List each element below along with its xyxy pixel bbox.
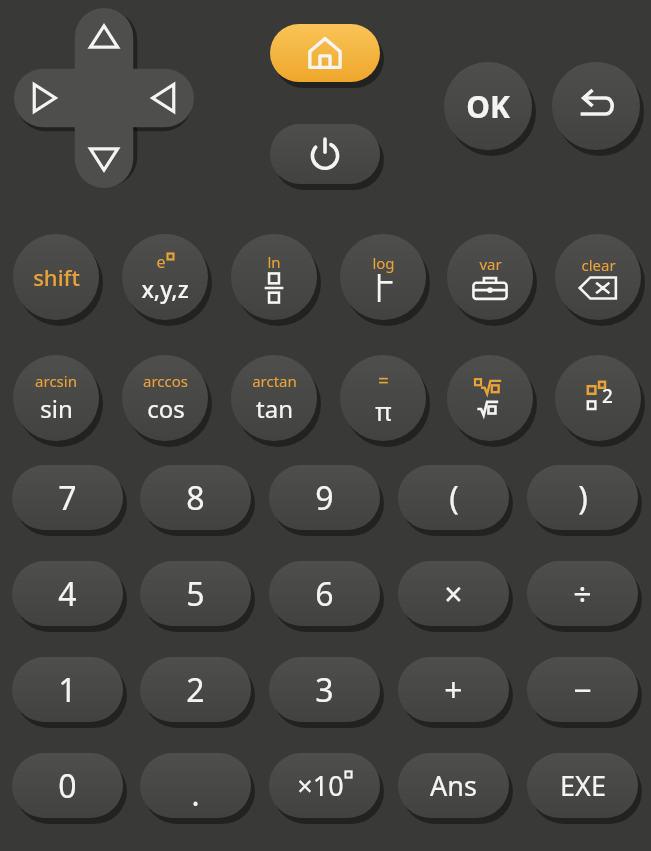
button[interactable]: 2 <box>140 657 251 722</box>
staticText: arcsin <box>35 371 77 391</box>
button[interactable]: x y z variables <box>122 234 208 320</box>
button[interactable]: 7 <box>12 465 123 530</box>
button[interactable]: ( <box>398 465 509 530</box>
staticText: var <box>479 254 502 274</box>
button[interactable]: 0 <box>12 753 123 818</box>
staticText: 8 <box>186 476 205 520</box>
button[interactable]: tan <box>231 355 317 441</box>
staticText: EXE <box>560 767 606 804</box>
staticText: ÷ <box>573 572 592 616</box>
staticText: tan <box>256 392 293 425</box>
button[interactable]: . <box>140 753 251 818</box>
button[interactable]: Back <box>552 62 640 150</box>
staticText: 3 <box>315 668 334 712</box>
button[interactable]: 3 <box>269 657 380 722</box>
button[interactable]: cos <box>122 355 208 441</box>
button[interactable]: Square <box>555 355 641 441</box>
button[interactable]: Log base <box>340 234 426 320</box>
staticText: clear <box>581 255 616 275</box>
staticText: shift <box>33 262 80 292</box>
button[interactable]: 9 <box>269 465 380 530</box>
staticText: 2 <box>186 668 205 712</box>
staticText: 0 <box>58 764 77 808</box>
staticText: 1 <box>58 668 77 712</box>
button[interactable]: Ans <box>398 753 509 818</box>
button[interactable]: Clear <box>555 234 641 320</box>
button[interactable]: shift <box>13 234 99 320</box>
staticText: arctan <box>252 371 297 391</box>
staticText: 6 <box>315 572 334 616</box>
button[interactable]: OK <box>444 62 532 150</box>
staticText: 9 <box>315 476 334 520</box>
button[interactable]: ×10 <box>269 753 380 818</box>
staticText: = <box>378 368 389 394</box>
staticText: e <box>156 251 166 273</box>
button[interactable]: Square root <box>447 355 533 441</box>
button[interactable]: sin <box>13 355 99 441</box>
staticText: arccos <box>143 371 188 391</box>
staticText: 5 <box>186 572 205 616</box>
button[interactable]: Fraction <box>231 234 317 320</box>
staticText: . <box>191 774 200 815</box>
button[interactable]: − <box>527 657 638 722</box>
button[interactable]: ÷ <box>527 561 638 626</box>
button[interactable]: 6 <box>269 561 380 626</box>
button[interactable]: EXE <box>527 753 638 818</box>
staticText: ) <box>578 476 588 520</box>
staticText: Ans <box>430 767 477 804</box>
button[interactable]: Home <box>270 24 380 82</box>
button[interactable]: pi <box>340 355 426 441</box>
staticText: x,y,z <box>141 273 189 304</box>
button[interactable]: + <box>398 657 509 722</box>
button[interactable]: 4 <box>12 561 123 626</box>
staticText: OK <box>466 86 510 127</box>
staticText: 2 <box>602 383 613 409</box>
button[interactable]: × <box>398 561 509 626</box>
staticText: − <box>573 668 592 712</box>
staticText: 4 <box>58 572 77 616</box>
staticText: + <box>444 668 463 712</box>
staticText: sin <box>40 392 73 425</box>
staticText: cos <box>147 392 185 425</box>
button[interactable]: 8 <box>140 465 251 530</box>
button[interactable]: 5 <box>140 561 251 626</box>
staticText: ×10 <box>297 767 344 804</box>
button[interactable]: Power <box>270 124 380 184</box>
staticText: × <box>444 572 463 616</box>
staticText: log <box>372 253 395 273</box>
button[interactable]: Variables <box>447 234 533 320</box>
staticText: 7 <box>58 476 77 520</box>
staticText: ( <box>449 476 459 520</box>
staticText: ln <box>267 252 281 272</box>
button[interactable]: 1 <box>12 657 123 722</box>
button[interactable]: ) <box>527 465 638 530</box>
button[interactable]: D-pad <box>14 8 194 188</box>
staticText: π <box>375 394 392 428</box>
